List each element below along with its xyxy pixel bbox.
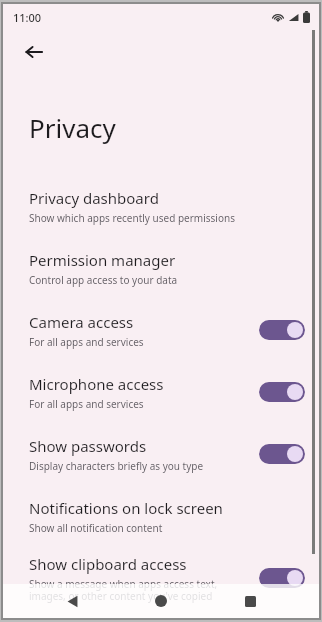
button[interactable]: Recent apps [230, 584, 270, 618]
button[interactable]: Notifications on lock screen [3, 485, 319, 547]
staticText: Permission manager [29, 250, 176, 270]
button[interactable]: Home [141, 584, 181, 618]
button[interactable]: Microphone access [3, 361, 319, 423]
staticText: Notifications on lock screen [29, 498, 223, 518]
button[interactable]: Back [17, 35, 51, 69]
staticText: For all apps and services [29, 397, 144, 411]
staticText: Privacy [29, 110, 116, 145]
button[interactable]: Show passwords toggle [259, 441, 305, 467]
staticText: Display characters briefly as you type [29, 459, 204, 473]
staticText: Privacy dashboard [29, 188, 159, 208]
staticText: Microphone access [29, 374, 164, 394]
staticText: Show all notification content [29, 521, 163, 535]
button[interactable]: Show clipboard access [3, 547, 319, 609]
button[interactable]: Camera access toggle [259, 317, 305, 343]
button[interactable]: Show clipboard access toggle [259, 565, 305, 591]
button[interactable]: Back [52, 584, 92, 618]
button[interactable]: Show passwords [3, 423, 319, 485]
button[interactable]: Microphone access toggle [259, 379, 305, 405]
staticText: Control app access to your data [29, 273, 178, 287]
staticText: 11:00 [13, 10, 42, 25]
staticText: For all apps and services [29, 335, 144, 349]
staticText: Show a message when apps access text, im… [29, 577, 218, 603]
button[interactable]: Privacy dashboard [3, 175, 319, 237]
button[interactable]: Camera access [3, 299, 319, 361]
staticText: Show passwords [29, 436, 147, 456]
staticText: Show clipboard access [29, 554, 187, 574]
staticText: Camera access [29, 312, 134, 332]
button[interactable]: Permission manager [3, 237, 319, 299]
staticText: Show which apps recently used permission… [29, 211, 235, 225]
